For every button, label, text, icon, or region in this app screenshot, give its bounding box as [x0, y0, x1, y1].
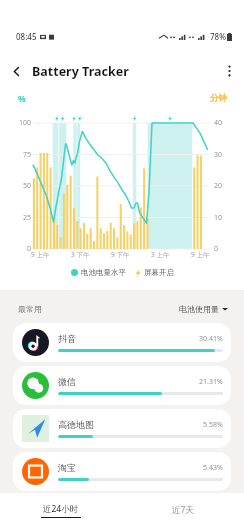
staticText: 50: [22, 181, 31, 191]
staticText: 30: [214, 150, 223, 160]
staticText: Battery Tracker: [32, 63, 129, 80]
button[interactable]: Back: [0, 52, 32, 90]
button[interactable]: 抖音: [13, 323, 231, 362]
button[interactable]: 高德地图: [13, 409, 231, 448]
staticText: 近24小时: [43, 503, 79, 515]
staticText: 电池使用量: [179, 304, 219, 314]
staticText: 10: [214, 213, 223, 223]
staticText: 20: [214, 181, 223, 191]
staticText: 高德地图: [58, 419, 94, 430]
staticText: 抖音: [58, 333, 76, 344]
staticText: 75: [22, 150, 31, 160]
staticText: 屏幕开启: [144, 268, 174, 277]
button[interactable]: 近7天: [122, 493, 244, 527]
staticText: 9 下午: [111, 250, 130, 259]
staticText: 21.31%: [199, 377, 223, 387]
staticText: 08:45: [16, 31, 37, 42]
staticText: 0: [214, 244, 219, 254]
staticText: 5.43%: [203, 463, 223, 473]
staticText: 3 下午: [71, 250, 90, 259]
staticText: 微信: [58, 376, 76, 387]
staticText: 9 上午: [191, 250, 210, 259]
button[interactable]: 微信: [13, 366, 231, 405]
staticText: 电池电量水平: [81, 268, 126, 277]
button[interactable]: 淘宝: [13, 452, 231, 491]
staticText: 25: [22, 213, 31, 223]
staticText: 9 上午: [31, 250, 50, 259]
staticText: 40: [214, 118, 223, 128]
staticText: 3 上午: [151, 250, 170, 259]
staticText: %: [18, 93, 26, 105]
staticText: 0: [26, 244, 31, 254]
staticText: 100: [18, 118, 31, 128]
staticText: 30.41%: [199, 334, 223, 344]
button[interactable]: 近24小时: [0, 493, 122, 527]
button[interactable]: 电池使用量: [179, 304, 228, 314]
staticText: 淘宝: [58, 462, 76, 473]
staticText: 近7天: [172, 504, 194, 516]
staticText: 最常用: [18, 304, 42, 314]
staticText: 78%: [210, 31, 226, 42]
staticText: 5.58%: [203, 420, 223, 430]
staticText: 分钟: [210, 93, 227, 104]
button[interactable]: More options: [214, 52, 244, 90]
